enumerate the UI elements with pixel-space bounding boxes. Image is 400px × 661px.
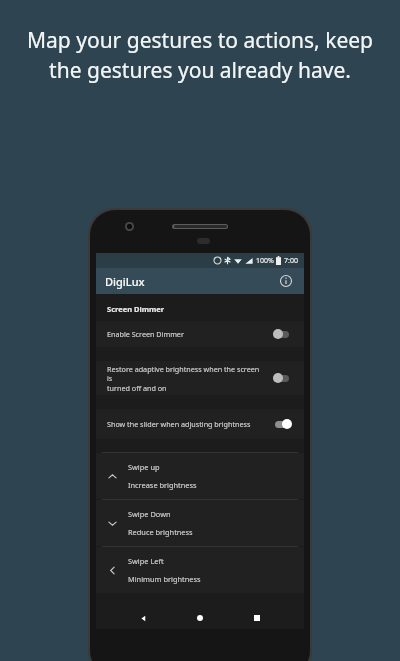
staticText: Show the slider when adjusting brightnes…: [107, 419, 251, 429]
button[interactable]: Home: [190, 608, 210, 628]
staticText: Swipe up: [128, 462, 160, 472]
staticText: Screen Dimmer: [107, 304, 165, 314]
staticText: Restore adaptive brightness when the scr…: [107, 364, 265, 383]
button[interactable]: Restore adaptive brightness when the scr…: [96, 361, 304, 395]
staticText: Map your gestures to actions, keep the g…: [16, 26, 384, 84]
staticText: 7:00: [284, 256, 298, 266]
button[interactable]: Info: [277, 272, 295, 290]
staticText: DigiLux: [105, 274, 145, 289]
button[interactable]: Swipe Left: [96, 547, 304, 593]
button[interactable]: Back: [133, 608, 153, 628]
button[interactable]: Recents: [247, 608, 267, 628]
staticText: Increase brightness: [128, 480, 197, 490]
button[interactable]: Show the slider when adjusting brightnes…: [96, 409, 304, 439]
staticText: Swipe Down: [128, 509, 171, 519]
staticText: Minimum brightness: [128, 574, 201, 584]
staticText: 100%: [256, 256, 274, 266]
staticText: Reduce brightness: [128, 527, 193, 537]
staticText: turned off and on: [107, 383, 167, 393]
button[interactable]: Enable Screen Dimmer: [96, 321, 304, 347]
button[interactable]: Swipe Down: [96, 500, 304, 546]
button[interactable]: Swipe up: [96, 453, 304, 499]
staticText: Swipe Left: [128, 556, 164, 566]
staticText: Enable Screen Dimmer: [107, 329, 184, 339]
